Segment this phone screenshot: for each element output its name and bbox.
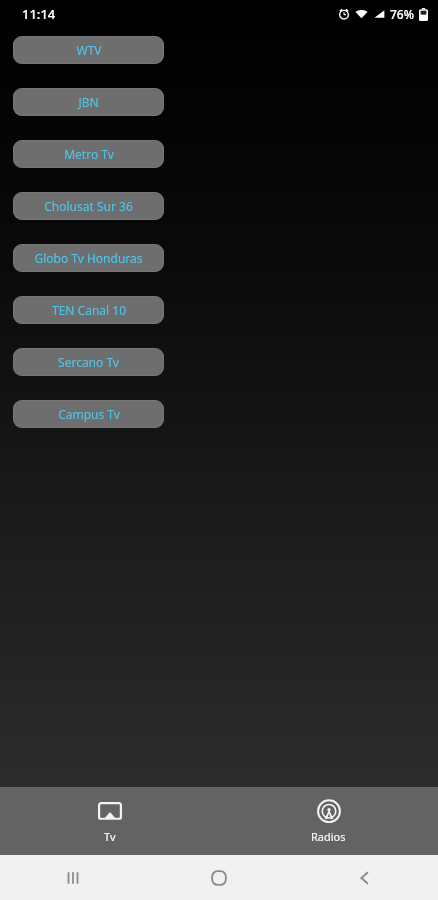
button[interactable]: Home bbox=[146, 855, 292, 900]
staticText: Cholusat Sur 36 bbox=[44, 198, 133, 214]
staticText: Globo Tv Honduras bbox=[34, 250, 143, 266]
button[interactable]: TEN Canal 10 bbox=[13, 296, 164, 324]
staticText: Sercano Tv bbox=[58, 354, 119, 370]
button[interactable]: WTV bbox=[13, 36, 164, 64]
button[interactable]: Campus Tv bbox=[13, 400, 164, 428]
button[interactable]: Metro Tv bbox=[13, 140, 164, 168]
staticText: Campus Tv bbox=[58, 406, 120, 422]
staticText: WTV bbox=[76, 42, 102, 58]
button[interactable]: JBN bbox=[13, 88, 164, 116]
staticText: Metro Tv bbox=[64, 146, 114, 162]
button[interactable]: Tv bbox=[0, 787, 219, 855]
staticText: 76% bbox=[390, 6, 414, 22]
button[interactable]: Globo Tv Honduras bbox=[13, 244, 164, 272]
staticText: Radios bbox=[311, 829, 346, 844]
button[interactable]: Radios bbox=[219, 787, 438, 855]
staticText: Tv bbox=[104, 829, 116, 844]
staticText: TEN Canal 10 bbox=[52, 302, 126, 318]
button[interactable]: Sercano Tv bbox=[13, 348, 164, 376]
button[interactable]: Back bbox=[292, 855, 438, 900]
button[interactable]: Recent apps bbox=[0, 855, 146, 900]
staticText: 11:14 bbox=[22, 5, 56, 23]
button[interactable]: Cholusat Sur 36 bbox=[13, 192, 164, 220]
staticText: JBN bbox=[78, 94, 99, 110]
